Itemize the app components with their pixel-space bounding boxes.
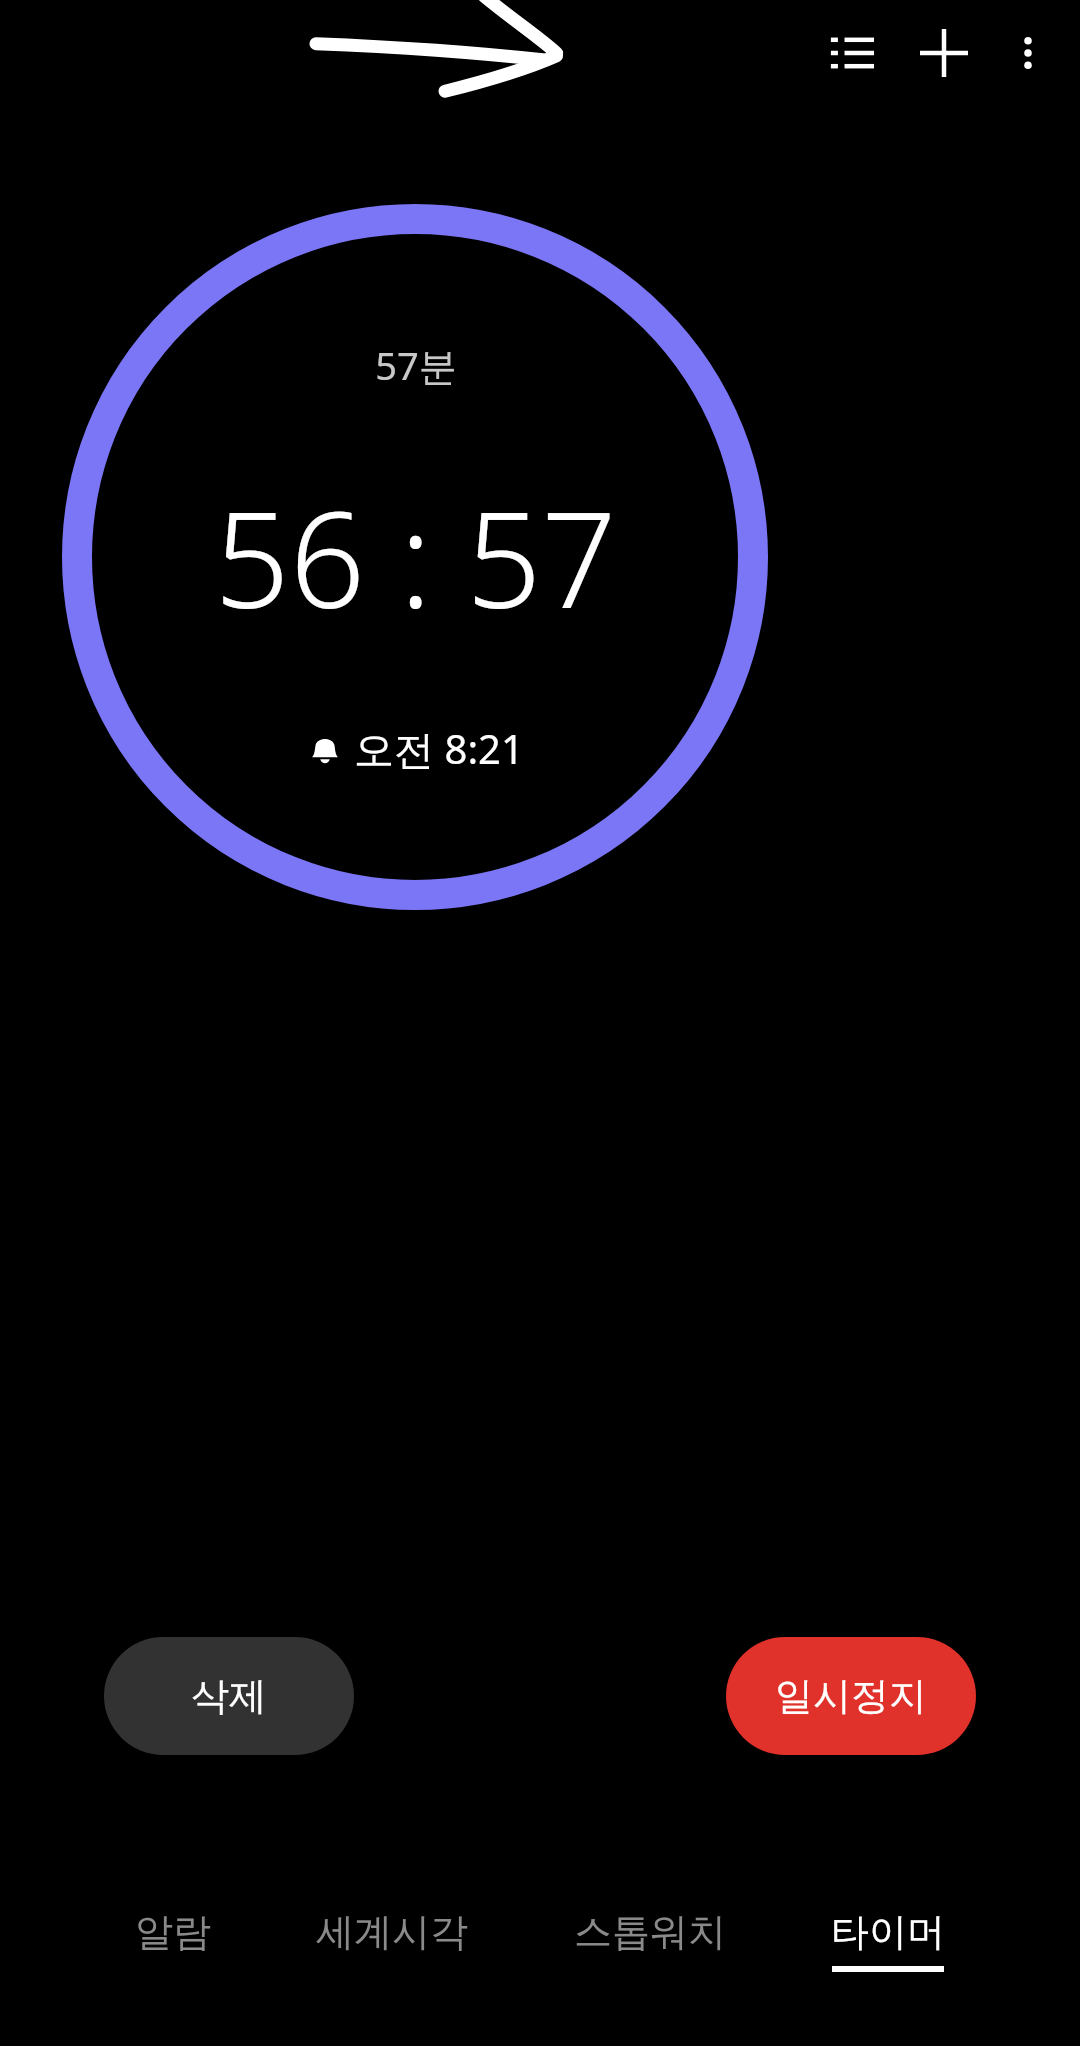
- staticText: 56 : 57: [214, 467, 617, 647]
- button[interactable]: 삭제: [104, 1637, 354, 1755]
- button[interactable]: 일시정지: [726, 1637, 976, 1755]
- button[interactable]: 세계시각: [306, 1896, 478, 1984]
- button[interactable]: 알람: [125, 1896, 221, 1984]
- staticText: 타이머: [831, 1908, 945, 1956]
- staticText: 스톱워치: [574, 1908, 726, 1956]
- button[interactable]: 타이머: [821, 1896, 955, 1984]
- staticText: 알람: [135, 1908, 211, 1956]
- button[interactable]: More options: [990, 15, 1066, 91]
- staticText: 57분: [375, 339, 457, 391]
- staticText: 일시정지: [775, 1672, 927, 1720]
- staticText: 세계시각: [316, 1908, 468, 1956]
- staticText: 삭제: [191, 1672, 267, 1720]
- button[interactable]: Add timer: [902, 11, 986, 95]
- button[interactable]: Timer list: [810, 11, 894, 95]
- button[interactable]: 스톱워치: [564, 1896, 736, 1984]
- staticText: 오전 8:21: [354, 721, 524, 776]
